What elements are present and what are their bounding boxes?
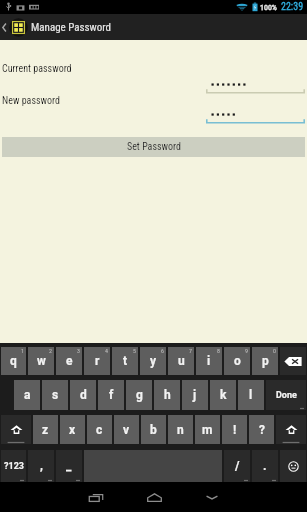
button[interactable]: i <box>196 347 222 375</box>
staticText: v <box>123 423 130 437</box>
staticText: 1 <box>21 347 24 354</box>
staticText: 3 <box>77 347 80 354</box>
staticText: 4 <box>105 347 108 354</box>
staticText: q <box>10 354 17 368</box>
button[interactable]: d <box>70 380 96 410</box>
other: Shift <box>285 424 298 435</box>
staticText: r <box>95 354 100 368</box>
other: Emoji <box>288 461 299 472</box>
staticText: d <box>80 388 87 402</box>
button[interactable]: e <box>56 347 82 375</box>
staticText: x <box>69 423 76 437</box>
staticText: _ <box>66 459 72 473</box>
button[interactable]: c <box>87 415 112 444</box>
button[interactable]: n <box>168 415 193 444</box>
staticText: Done <box>276 390 297 401</box>
staticText: Current password <box>2 63 72 75</box>
button[interactable]: _ <box>56 450 82 482</box>
staticText: . <box>263 459 267 473</box>
other: Delete <box>284 356 302 367</box>
staticText: w <box>37 354 46 368</box>
button[interactable]: Delete <box>280 347 306 375</box>
staticText: New password <box>2 95 60 107</box>
staticText: 2 <box>49 347 52 354</box>
button[interactable]: v <box>114 415 139 444</box>
button[interactable]: , <box>28 450 54 482</box>
button[interactable]: New password field <box>206 108 305 124</box>
staticText: 6 <box>161 347 164 354</box>
button[interactable]: ?123 <box>1 450 26 482</box>
button[interactable]: ! <box>222 415 247 444</box>
button[interactable]: Set Password <box>2 137 305 157</box>
button[interactable]: g <box>126 380 152 410</box>
button[interactable]: a <box>14 380 40 410</box>
button[interactable]: f <box>98 380 124 410</box>
staticText: g <box>136 388 143 402</box>
staticText: s <box>52 388 59 402</box>
button[interactable]: o <box>224 347 250 375</box>
staticText: n <box>177 423 184 437</box>
staticText: Set Password <box>127 141 181 153</box>
staticText: / <box>235 459 240 473</box>
staticText: y <box>150 354 157 368</box>
button[interactable]: / <box>224 450 250 482</box>
staticText: ! <box>233 423 237 437</box>
button[interactable]: . <box>252 450 278 482</box>
button[interactable]: m <box>195 415 220 444</box>
button[interactable]: Emoji <box>280 450 306 482</box>
staticText: b <box>150 423 157 437</box>
button[interactable]: ? <box>249 415 274 444</box>
button[interactable]: Recent apps <box>67 482 125 512</box>
button[interactable]: t <box>112 347 138 375</box>
staticText: , <box>40 459 43 473</box>
staticText: z <box>42 423 49 437</box>
button[interactable]: b <box>141 415 166 444</box>
staticText: ?123 <box>4 461 24 472</box>
staticText: ? <box>259 423 265 437</box>
staticText: l <box>249 388 253 402</box>
staticText: i <box>207 354 211 368</box>
button[interactable]: Navigate up <box>0 14 28 40</box>
staticText: a <box>24 388 31 402</box>
staticText: p <box>262 354 269 368</box>
button[interactable]: Done <box>266 380 306 410</box>
button[interactable]: Hide keyboard <box>183 482 241 512</box>
button[interactable]: Shift <box>276 415 306 444</box>
staticText: f <box>109 388 114 402</box>
button[interactable]: k <box>210 380 236 410</box>
button[interactable]: y <box>140 347 166 375</box>
staticText: h <box>164 388 171 402</box>
button[interactable]: Home <box>125 482 183 512</box>
button[interactable]: j <box>182 380 208 410</box>
button[interactable]: p <box>252 347 278 375</box>
staticText: 100% <box>260 3 277 12</box>
staticText: 7 <box>189 347 192 354</box>
button[interactable]: u <box>168 347 194 375</box>
other: Shift <box>10 424 23 435</box>
button[interactable]: Current password field <box>206 78 305 94</box>
staticText: 8 <box>217 347 220 354</box>
staticText: o <box>234 354 241 368</box>
staticText: j <box>193 388 197 402</box>
button[interactable]: r <box>84 347 110 375</box>
staticText: Manage Password <box>31 21 111 34</box>
button[interactable]: x <box>60 415 85 444</box>
button[interactable]: q <box>1 347 26 375</box>
button[interactable]: l <box>238 380 264 410</box>
button[interactable]: Shift <box>1 415 31 444</box>
button[interactable]: h <box>154 380 180 410</box>
staticText: u <box>178 354 185 368</box>
button[interactable]: z <box>33 415 58 444</box>
staticText: c <box>96 423 103 437</box>
staticText: 5 <box>133 347 136 354</box>
staticText: 9 <box>245 347 248 354</box>
staticText: 22:39 <box>281 1 304 13</box>
staticText: m <box>202 423 213 437</box>
staticText: t <box>123 354 128 368</box>
button[interactable]: s <box>42 380 68 410</box>
staticText: 0 <box>273 347 276 354</box>
button[interactable]: w <box>28 347 54 375</box>
staticText: e <box>66 354 73 368</box>
staticText: k <box>220 388 227 402</box>
